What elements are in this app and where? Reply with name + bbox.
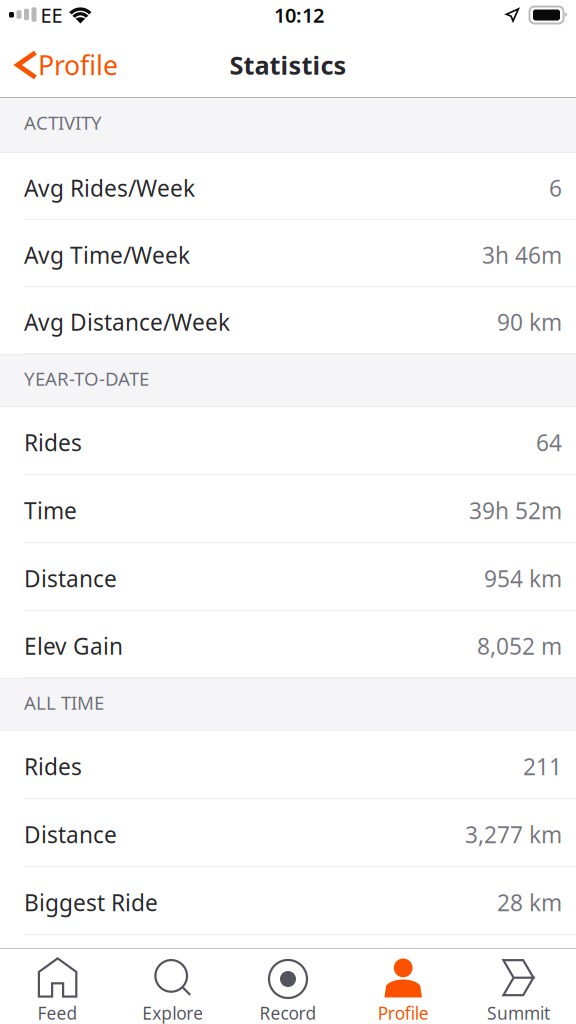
staticText: ACTIVITY	[24, 110, 102, 135]
staticText: Feed	[38, 1001, 78, 1024]
button[interactable]: Feed	[0, 949, 115, 1024]
staticText: 954 km	[484, 563, 562, 593]
staticText: Avg Rides/Week	[24, 173, 195, 203]
staticText: Summit	[487, 1001, 550, 1024]
staticText: Distance	[24, 563, 117, 593]
button[interactable]: Summit	[461, 949, 576, 1024]
staticText: 3,277 km	[465, 819, 562, 849]
staticText: Rides	[24, 427, 82, 457]
staticText: Profile	[378, 1001, 429, 1024]
button[interactable]: Explore	[115, 949, 230, 1024]
staticText: YEAR-TO-DATE	[24, 366, 149, 391]
staticText: Record	[259, 1001, 316, 1024]
staticText: 211	[523, 751, 562, 781]
staticText: Distance	[24, 819, 117, 849]
staticText: 8,052 m	[477, 631, 562, 661]
button[interactable]: Profile	[346, 949, 461, 1024]
staticText: 39h 52m	[469, 495, 562, 525]
staticText: Statistics	[229, 48, 346, 82]
staticText: 6	[549, 173, 562, 203]
staticText: Biggest Ride	[24, 887, 158, 917]
staticText: 90 km	[497, 307, 562, 337]
staticText: 3h 46m	[482, 240, 562, 270]
staticText: Rides	[24, 751, 82, 781]
staticText: 10:12	[274, 2, 324, 28]
staticText: 28 km	[497, 887, 562, 917]
staticText: ALL TIME	[24, 690, 104, 715]
staticText: Explore	[142, 1001, 203, 1024]
staticText: Elev Gain	[24, 631, 123, 661]
button[interactable]: Record	[230, 949, 346, 1024]
staticText: Profile	[38, 47, 118, 83]
staticText: 64	[536, 427, 562, 457]
staticText: Time	[24, 495, 77, 525]
staticText: Avg Time/Week	[24, 240, 190, 270]
staticText: EE	[40, 2, 62, 28]
button[interactable]: Profile	[0, 33, 130, 97]
staticText: Avg Distance/Week	[24, 307, 230, 337]
